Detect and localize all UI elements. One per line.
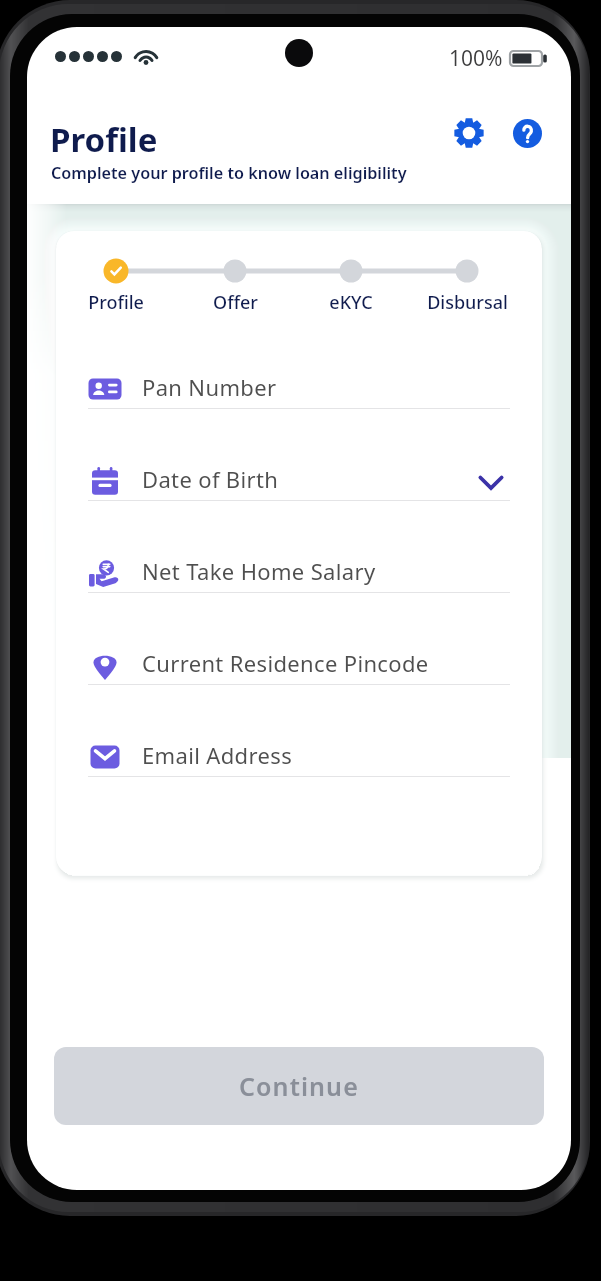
staticText: Complete your profile to know loan eligi… — [51, 162, 407, 184]
button[interactable]: Settings — [447, 111, 491, 155]
button[interactable]: Current Residence Pincode — [56, 646, 542, 702]
button[interactable]: eKYC — [291, 259, 411, 315]
button[interactable]: Profile — [56, 259, 176, 315]
staticText: Profile — [50, 117, 158, 162]
button[interactable]: Email Address — [56, 738, 542, 794]
button[interactable]: Disbursal — [407, 259, 527, 315]
staticText: Profile — [88, 290, 144, 315]
staticText: 100% — [449, 44, 503, 73]
staticText: Current Residence Pincode — [142, 648, 429, 678]
button[interactable]: Help — [505, 111, 549, 155]
button[interactable]: Continue — [54, 1047, 544, 1125]
staticText: Email Address — [142, 740, 293, 770]
staticText: Continue — [239, 1069, 359, 1103]
staticText: Pan Number — [142, 372, 277, 402]
staticText: Date of Birth — [142, 464, 279, 494]
button[interactable]: Offer — [175, 259, 295, 315]
staticText: Net Take Home Salary — [142, 556, 376, 586]
button[interactable]: Net Take Home Salary — [56, 554, 542, 610]
staticText: eKYC — [329, 290, 373, 315]
button[interactable]: Date of Birth — [56, 462, 542, 518]
staticText: Disbursal — [427, 290, 508, 315]
button[interactable]: Pan Number — [56, 370, 542, 426]
staticText: Offer — [213, 290, 258, 315]
